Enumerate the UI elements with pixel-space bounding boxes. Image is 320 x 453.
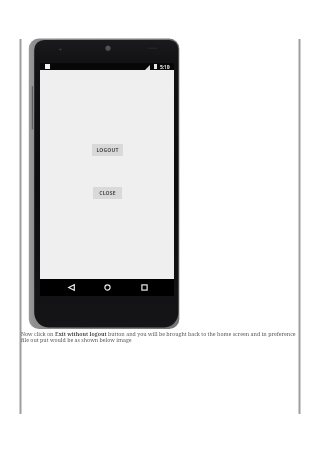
button[interactable]: Recents: [136, 279, 152, 295]
button[interactable]: Back: [63, 279, 79, 295]
button[interactable]: Home: [99, 279, 115, 295]
staticText: Now click on Exit without logout button …: [21, 330, 300, 344]
button[interactable]: LOGOUT: [92, 144, 123, 156]
staticText: CLOSE: [99, 190, 116, 197]
staticText: 5:10: [160, 64, 170, 71]
staticText: LOGOUT: [96, 147, 119, 154]
button[interactable]: CLOSE: [93, 187, 122, 199]
